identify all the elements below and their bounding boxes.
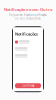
staticText: Veja como ficará a notificação (9, 13, 47, 17)
staticText: Notificação no seu Outro (4, 7, 52, 12)
staticText: Notificações (15, 31, 38, 36)
staticText: Confirmar (21, 84, 34, 87)
button[interactable]: Confirmar (13, 83, 43, 88)
staticText: no seu dispositivo (15, 17, 41, 20)
